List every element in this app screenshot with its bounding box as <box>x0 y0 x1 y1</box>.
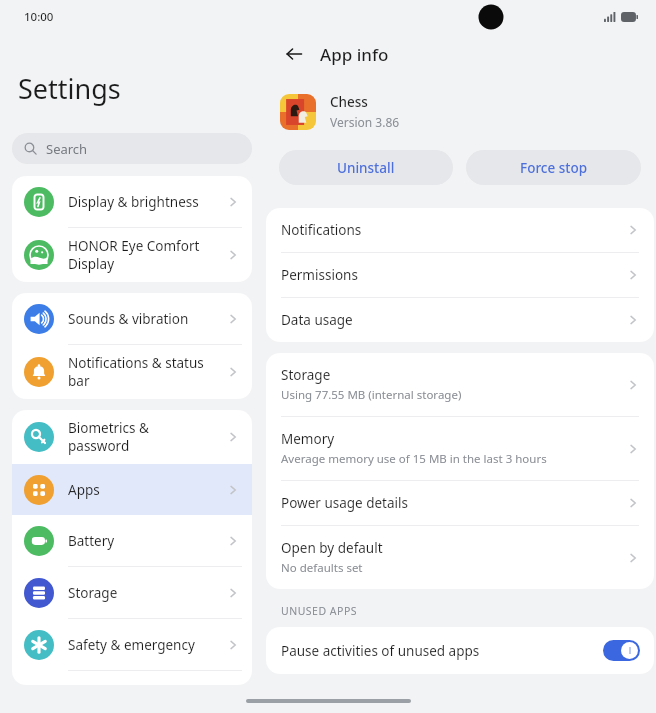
staticText: UNUSED APPS <box>281 604 358 618</box>
staticText: Search <box>46 140 88 158</box>
button[interactable]: Open by default <box>266 526 654 589</box>
staticText: Chess <box>330 93 368 111</box>
button[interactable]: Permissions <box>266 253 654 297</box>
button[interactable]: Storage <box>12 567 252 618</box>
button[interactable]: Safety & emergency <box>12 619 252 670</box>
staticText: Average memory use of 15 MB in the last … <box>281 451 547 467</box>
button[interactable]: Force stop <box>466 150 641 185</box>
button[interactable]: Apps <box>12 464 252 515</box>
staticText: Apps <box>68 481 220 499</box>
button[interactable]: Memory <box>266 417 654 480</box>
button[interactable]: Biometrics & password <box>12 410 252 464</box>
button[interactable]: Data usage <box>266 298 654 342</box>
staticText: Battery <box>68 532 220 550</box>
staticText: Memory <box>281 430 335 448</box>
button[interactable]: Sounds & vibration <box>12 293 252 344</box>
button[interactable]: Storage <box>266 353 654 416</box>
staticText: Settings <box>18 70 121 107</box>
staticText: HONOR Eye Comfort Display <box>68 237 220 273</box>
staticText: Uninstall <box>337 159 395 177</box>
button[interactable]: Power usage details <box>266 481 654 525</box>
staticText: Data usage <box>281 311 353 329</box>
staticText: Using 77.55 MB (internal storage) <box>281 387 462 403</box>
button[interactable]: Search <box>12 133 252 164</box>
staticText: Display & brightness <box>68 193 220 211</box>
button[interactable]: Uninstall <box>279 150 453 185</box>
button[interactable]: Back <box>278 38 310 70</box>
staticText: Force stop <box>520 159 588 177</box>
staticText: 10:00 <box>24 9 54 25</box>
staticText: Power usage details <box>281 494 408 512</box>
staticText: Sounds & vibration <box>68 310 220 328</box>
button[interactable]: Pause activities of unused apps <box>266 627 654 674</box>
staticText: No defaults set <box>281 560 363 576</box>
staticText: Storage <box>281 366 331 384</box>
button[interactable]: Display & brightness <box>12 176 252 227</box>
staticText: Version 3.86 <box>330 114 400 130</box>
staticText: Biometrics & password <box>68 419 220 455</box>
staticText: Pause activities of unused apps <box>281 642 595 660</box>
staticText: Open by default <box>281 539 383 557</box>
button[interactable]: Notifications & status bar <box>12 345 252 399</box>
button[interactable]: Notifications <box>266 208 654 252</box>
staticText: Notifications <box>281 221 362 239</box>
staticText: Safety & emergency <box>68 636 220 654</box>
staticText: Storage <box>68 584 220 602</box>
staticText: Notifications & status bar <box>68 354 220 390</box>
staticText: Permissions <box>281 266 358 284</box>
button[interactable]: Battery <box>12 515 252 566</box>
button[interactable]: HONOR Eye Comfort Display <box>12 228 252 282</box>
staticText: App info <box>320 43 389 66</box>
